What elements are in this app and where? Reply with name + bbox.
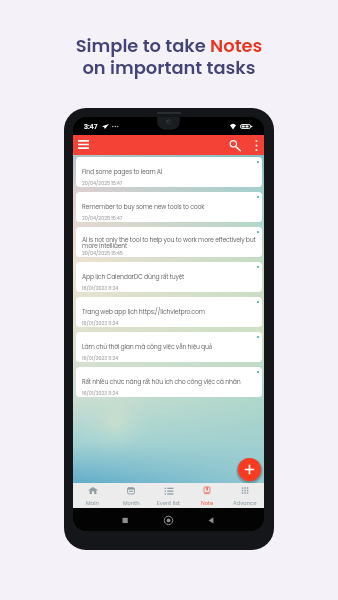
staticText: 16/01/2023 11:24	[82, 390, 119, 397]
button[interactable]: Note	[188, 483, 226, 508]
button[interactable]: More options	[248, 135, 264, 155]
staticText: Simple to take Notes on important tasks	[0, 33, 338, 80]
staticText: Làm chủ thời gian mà công việc vẫn hiệu …	[82, 342, 213, 351]
staticText: Main	[86, 499, 99, 506]
button[interactable]: Search	[227, 135, 243, 155]
button[interactable]: AI is not only the tool to help you to w…	[76, 227, 262, 257]
button[interactable]: Add note	[238, 458, 261, 481]
staticText: 16/01/2023 11:24	[82, 355, 119, 362]
staticText: 3:47	[84, 122, 98, 131]
staticText: 20/04/2025 15:47	[82, 180, 123, 187]
button[interactable]: Rất nhiều chức năng rất hữu ích cho công…	[76, 367, 262, 397]
staticText: App lịch CalendarDC dùng rất tuyệt	[82, 272, 185, 281]
button[interactable]: App lịch CalendarDC dùng rất tuyệt	[76, 262, 262, 292]
staticText: 16/01/2023 11:24	[82, 320, 119, 327]
staticText: 20/04/2025 15:45	[82, 250, 123, 257]
button[interactable]: Month	[112, 483, 150, 508]
staticText: 20/04/2025 15:47	[82, 215, 123, 222]
staticText: Rất nhiều chức năng rất hữu ích cho công…	[82, 377, 241, 386]
staticText: Trang web app lịch https://lichvietpro.c…	[82, 307, 205, 316]
button[interactable]: Trang web app lịch https://lichvietpro.c…	[76, 297, 262, 327]
button[interactable]: Làm chủ thời gian mà công việc vẫn hiệu …	[76, 332, 262, 362]
staticText: AI is not only the tool to help you to w…	[82, 235, 256, 248]
staticText: Month	[123, 499, 140, 506]
staticText: Event list	[157, 499, 181, 506]
staticText: Advance	[233, 499, 257, 506]
button[interactable]: Remember to buy some new tools to cook	[76, 192, 262, 222]
button[interactable]: Find some pages to learn AI	[76, 157, 262, 187]
staticText: 16/01/2023 11:24	[82, 285, 119, 292]
staticText: Find some pages to learn AI	[82, 167, 163, 176]
button[interactable]: Advance	[226, 483, 264, 508]
staticText: Note	[201, 499, 214, 506]
button[interactable]: Open navigation menu	[73, 135, 94, 155]
button[interactable]: Main	[73, 483, 112, 508]
button[interactable]: Event list	[150, 483, 188, 508]
staticText: Remember to buy some new tools to cook	[82, 202, 205, 211]
